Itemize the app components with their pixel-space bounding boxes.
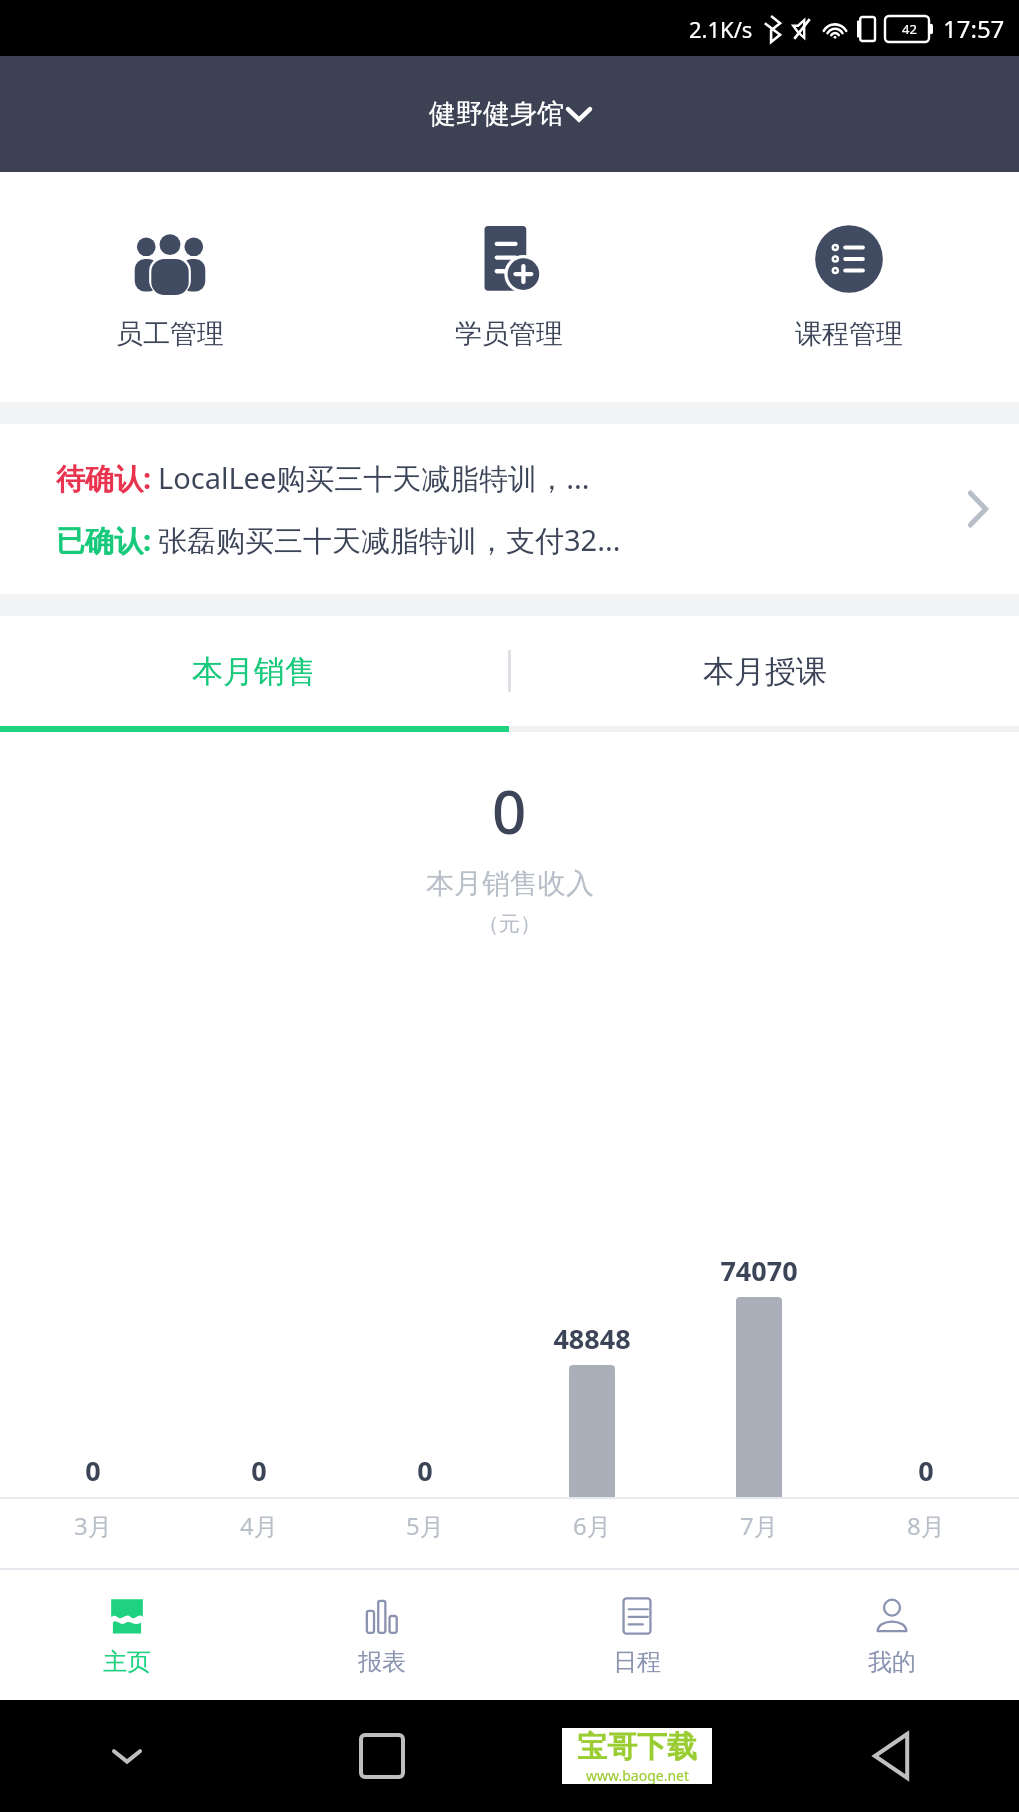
staticText: 我的 bbox=[868, 1647, 916, 1677]
staticText: 待确认: bbox=[56, 458, 152, 498]
staticText: 张磊购买三十天减脂特训，支付32... bbox=[158, 520, 621, 560]
button[interactable]: 报表 bbox=[254, 1570, 509, 1700]
staticText: 日程 bbox=[613, 1647, 661, 1677]
staticText: 6月 bbox=[573, 1509, 611, 1542]
staticText: 已确认: bbox=[56, 520, 152, 560]
button[interactable]: 本月授课 bbox=[511, 616, 1019, 726]
staticText: 0 bbox=[417, 1452, 433, 1489]
staticText: 17:57 bbox=[943, 12, 1005, 45]
staticText: 4月 bbox=[240, 1509, 278, 1542]
staticText: 学员管理 bbox=[455, 317, 563, 351]
staticText: 本月销售 bbox=[192, 652, 316, 691]
staticText: 74070 bbox=[720, 1252, 798, 1289]
staticText: 本月授课 bbox=[703, 652, 827, 691]
staticText: 8月 bbox=[907, 1509, 945, 1542]
staticText: 5月 bbox=[406, 1509, 444, 1542]
button[interactable]: 员工管理 bbox=[0, 211, 339, 363]
staticText: 0 bbox=[918, 1452, 934, 1489]
staticText: 42 bbox=[902, 20, 917, 38]
staticText: LocalLee购买三十天减脂特训，... bbox=[158, 458, 590, 498]
staticText: 7月 bbox=[740, 1509, 778, 1542]
button[interactable]: 我的 bbox=[764, 1570, 1019, 1700]
staticText: 报表 bbox=[358, 1647, 406, 1677]
staticText: 健野健身馆 bbox=[429, 97, 564, 131]
staticText: 0 bbox=[251, 1452, 267, 1489]
button[interactable]: Home bbox=[509, 1700, 764, 1812]
staticText: 主页 bbox=[103, 1647, 151, 1677]
staticText: 本月销售收入 bbox=[426, 866, 594, 901]
staticText: 2.1K/s bbox=[689, 14, 753, 44]
staticText: 0 bbox=[492, 770, 527, 852]
staticText: 课程管理 bbox=[795, 317, 903, 351]
staticText: 0 bbox=[85, 1452, 101, 1489]
button[interactable]: 待确认: bbox=[0, 424, 1019, 594]
staticText: 3月 bbox=[74, 1509, 112, 1542]
button[interactable]: 课程管理 bbox=[679, 211, 1019, 363]
button[interactable]: Hide keyboard bbox=[0, 1700, 254, 1812]
button[interactable]: 健野健身馆 bbox=[417, 91, 602, 137]
button[interactable]: Recents bbox=[254, 1700, 509, 1812]
button[interactable]: 本月销售 bbox=[0, 616, 508, 726]
staticText: 48848 bbox=[553, 1320, 631, 1357]
staticText: 员工管理 bbox=[116, 317, 224, 351]
button[interactable]: Back bbox=[764, 1700, 1019, 1812]
staticText: www.baoge.net bbox=[586, 1766, 689, 1784]
staticText: （元） bbox=[478, 911, 541, 937]
button[interactable]: 主页 bbox=[0, 1570, 254, 1700]
button[interactable]: 日程 bbox=[509, 1570, 764, 1700]
button[interactable]: 学员管理 bbox=[339, 211, 679, 363]
staticText: 宝哥下载 bbox=[577, 1728, 697, 1766]
